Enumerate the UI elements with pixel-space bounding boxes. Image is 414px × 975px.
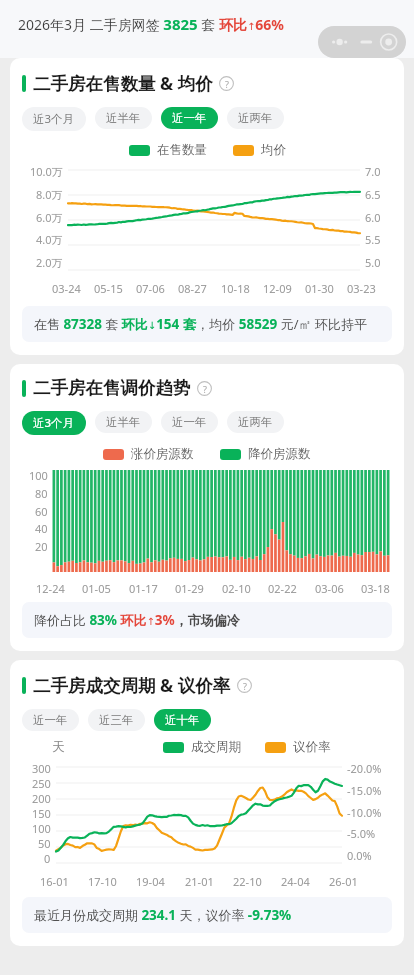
- staticText: 02-10: [222, 581, 251, 596]
- staticText: ?: [203, 383, 207, 395]
- staticText: 02-22: [268, 581, 297, 596]
- staticText: 50: [38, 836, 51, 851]
- staticText: -5.0%: [347, 826, 376, 841]
- staticText: 21-01: [185, 874, 214, 889]
- staticText: 6.5: [365, 187, 381, 202]
- staticText: 80: [35, 486, 48, 501]
- button[interactable]: 近十年: [154, 709, 211, 731]
- staticText: 12-24: [36, 581, 65, 596]
- staticText: 8.0万: [36, 187, 63, 202]
- staticText: 天: [52, 739, 65, 755]
- button[interactable]: 近半年: [95, 411, 152, 433]
- staticText: 03-06: [315, 581, 344, 596]
- button[interactable]: 说明: [237, 678, 252, 693]
- staticText: 近十年: [165, 713, 200, 727]
- staticText: ?: [225, 78, 229, 90]
- staticText: 议价率: [293, 739, 331, 755]
- staticText: 近半年: [106, 111, 141, 125]
- staticText: 均价: [261, 142, 286, 158]
- staticText: -10.0%: [347, 805, 382, 820]
- staticText: 二手房在售调价趋势: [33, 377, 191, 399]
- staticText: 16-01: [40, 874, 69, 889]
- staticText: 5.5: [365, 232, 381, 247]
- staticText: 10.0万: [30, 164, 63, 179]
- staticText: 近两年: [238, 111, 273, 125]
- button[interactable]: 近一年: [161, 411, 218, 433]
- staticText: 近半年: [106, 415, 141, 429]
- staticText: 60: [35, 504, 48, 519]
- staticText: 2.0万: [36, 255, 63, 270]
- staticText: 近三年: [99, 713, 134, 727]
- button[interactable]: 近一年: [161, 107, 218, 129]
- button[interactable]: 说明: [219, 76, 234, 91]
- staticText: 08-27: [178, 281, 207, 296]
- staticText: 0: [44, 851, 51, 863]
- staticText: 10-18: [221, 281, 250, 296]
- staticText: 01-17: [129, 581, 158, 596]
- staticText: 近一年: [172, 415, 207, 429]
- staticText: 22-10: [233, 874, 262, 889]
- staticText: 01-05: [82, 581, 111, 596]
- staticText: 成交周期: [191, 739, 241, 755]
- staticText: 近一年: [172, 111, 207, 125]
- staticText: 40: [35, 521, 48, 536]
- staticText: 4.0万: [36, 232, 63, 247]
- staticText: -15.0%: [347, 783, 382, 798]
- staticText: 20: [35, 539, 48, 554]
- button[interactable]: 近3个月: [22, 411, 86, 435]
- staticText: ?: [243, 680, 247, 692]
- staticText: 在售 87328 套 环比↓154 套，均价 58529 元/㎡ 环比持平: [34, 315, 367, 333]
- staticText: 200: [32, 791, 51, 806]
- staticText: 300: [32, 761, 51, 776]
- staticText: 6.0: [365, 210, 381, 225]
- staticText: 涨价房源数: [131, 446, 194, 462]
- button[interactable]: 近一年: [22, 709, 79, 731]
- button[interactable]: 更多: [318, 26, 406, 58]
- staticText: 01-29: [175, 581, 204, 596]
- staticText: 近一年: [33, 713, 68, 727]
- staticText: 24-04: [281, 874, 310, 889]
- staticText: 26-01: [329, 874, 358, 889]
- staticText: 03-23: [347, 281, 376, 296]
- staticText: 在售数量: [157, 142, 207, 158]
- staticText: 0.0%: [347, 848, 372, 863]
- staticText: 二手房成交周期 & 议价率: [33, 673, 231, 697]
- staticText: 03-24: [52, 281, 81, 296]
- staticText: 近3个月: [33, 415, 75, 431]
- staticText: 100: [29, 468, 48, 483]
- staticText: 近3个月: [33, 111, 75, 127]
- staticText: 150: [32, 806, 51, 821]
- staticText: 17-10: [88, 874, 117, 889]
- staticText: -20.0%: [347, 761, 382, 776]
- staticText: 2026年3月 二手房网签 3825 套 环比↑66%: [18, 14, 284, 34]
- button[interactable]: 近半年: [95, 107, 152, 129]
- staticText: 降价房源数: [248, 446, 311, 462]
- button[interactable]: 近3个月: [22, 107, 86, 131]
- staticText: 二手房在售数量 & 均价: [33, 71, 213, 95]
- staticText: 最近月份成交周期 234.1 天，议价率 -9.73%: [34, 906, 292, 924]
- staticText: 19-04: [136, 874, 165, 889]
- staticText: 03-18: [361, 581, 390, 596]
- staticText: 100: [32, 821, 51, 836]
- staticText: 6.0万: [36, 210, 63, 225]
- staticText: 05-15: [94, 281, 123, 296]
- button[interactable]: 近两年: [227, 411, 284, 433]
- staticText: 01-30: [305, 281, 334, 296]
- staticText: 5.0: [365, 255, 381, 270]
- staticText: 近两年: [238, 415, 273, 429]
- staticText: 07-06: [136, 281, 165, 296]
- button[interactable]: 说明: [197, 381, 212, 396]
- staticText: 7.0: [365, 164, 381, 179]
- staticText: 降价占比 83% 环比↑3%，市场偏冷: [34, 611, 240, 629]
- staticText: 12-09: [263, 281, 292, 296]
- button[interactable]: 近三年: [88, 709, 145, 731]
- staticText: 250: [32, 776, 51, 791]
- button[interactable]: 近两年: [227, 107, 284, 129]
